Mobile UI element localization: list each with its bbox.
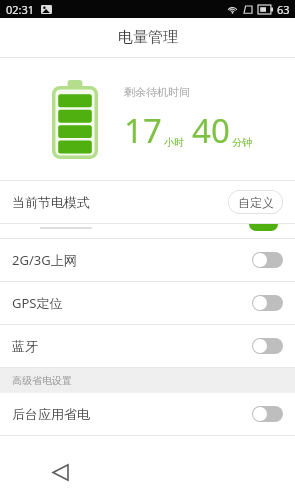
staticText: 小时 — [164, 136, 184, 149]
button[interactable]: 当前节电模式 — [0, 181, 295, 223]
button[interactable]: 蓝牙 — [0, 325, 295, 367]
staticText: 当前节电模式 — [12, 194, 90, 210]
button[interactable]: 后台应用省电 开关 — [252, 406, 283, 422]
button[interactable]: GPS定位 开关 — [252, 295, 283, 311]
button[interactable]: 蓝牙 开关 — [252, 338, 283, 354]
button[interactable]: 自定义 — [228, 190, 283, 214]
staticText: 2G/3G上网 — [12, 251, 77, 269]
button[interactable]: Back — [42, 454, 78, 490]
staticText: 自定义 — [238, 195, 274, 210]
staticText: 63 — [277, 2, 290, 17]
staticText: 17 — [124, 108, 162, 153]
staticText: 后台应用省电 — [12, 406, 90, 422]
staticText: 02:31 — [6, 2, 35, 17]
button[interactable]: GPS定位 — [0, 282, 295, 324]
staticText: 电量管理 — [118, 28, 178, 47]
button[interactable]: 智能省电 — [0, 224, 295, 238]
staticText: 40 — [192, 108, 230, 153]
button[interactable]: 后台应用省电 — [0, 393, 295, 435]
button[interactable]: 2G/3G上网 — [0, 239, 295, 281]
staticText: 剩余待机时间 — [124, 85, 190, 99]
button[interactable]: 2G/3G上网 开关 — [252, 252, 283, 268]
staticText: 蓝牙 — [12, 338, 38, 354]
staticText: 高级省电设置 — [12, 374, 72, 387]
staticText: GPS定位 — [12, 294, 63, 312]
staticText: 分钟 — [232, 136, 252, 149]
